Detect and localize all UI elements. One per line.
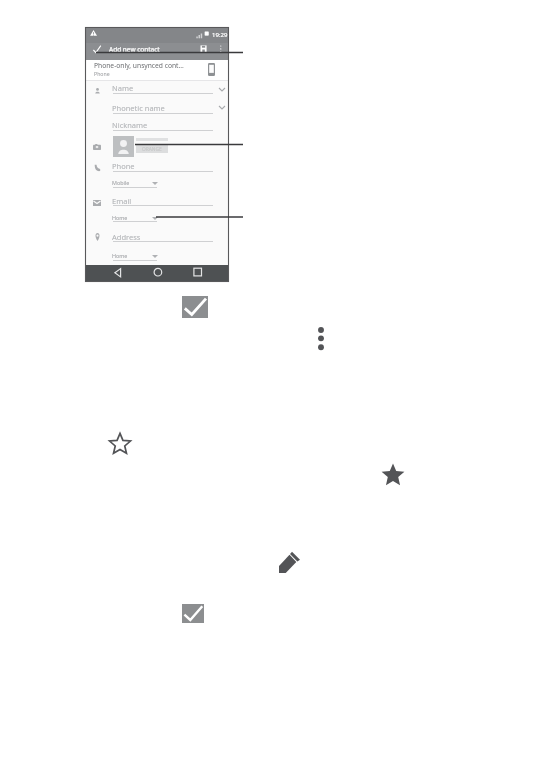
staticText: Email [112, 196, 132, 206]
staticText: Mobile [112, 179, 130, 186]
staticText: ORANGE [142, 146, 162, 153]
staticText: Add new contact [109, 45, 160, 54]
staticText: Nickname [112, 120, 148, 130]
staticText: 19:29 [212, 31, 228, 39]
button[interactable]: Add to favourites [109, 432, 131, 455]
staticText: Address [112, 232, 141, 242]
button[interactable]: Confirm / Save [182, 604, 204, 623]
button[interactable]: Edit [279, 551, 300, 573]
button[interactable]: More options [318, 327, 324, 350]
button[interactable]: Confirm / Save [182, 296, 208, 318]
staticText: Home [112, 214, 128, 221]
staticText: Home [112, 252, 128, 259]
staticText: Phone [112, 161, 135, 171]
staticText: Phone [94, 70, 110, 77]
staticText: Phone-only, unsynced cont... [94, 61, 184, 70]
staticText: Phonetic name [112, 103, 165, 113]
button[interactable]: Favourite [381, 463, 405, 486]
staticText: Name [112, 83, 134, 93]
